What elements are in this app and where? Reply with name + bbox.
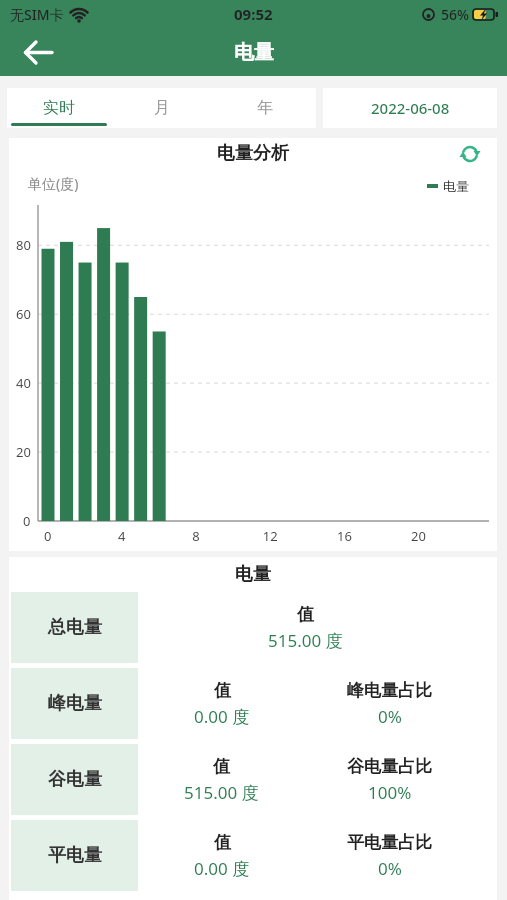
staticText: 实时 [43, 98, 75, 118]
staticText: 电量 [234, 40, 274, 65]
staticText: 0% [378, 857, 402, 880]
button[interactable]: 年 [213, 88, 316, 128]
staticText: 0.00 度 [194, 705, 250, 728]
staticText: 515.00 度 [268, 629, 343, 652]
button[interactable]: 峰电量 [11, 668, 497, 739]
staticText: 平电量 [48, 844, 102, 867]
staticText: 电量分析 [217, 142, 289, 165]
button[interactable] [461, 145, 479, 163]
staticText: 平电量占比 [347, 832, 432, 853]
staticText: 年 [257, 98, 273, 118]
staticText: 515.00 度 [184, 781, 259, 804]
staticText: 值 [213, 756, 230, 777]
staticText: 峰电量占比 [347, 680, 432, 701]
staticText: 值 [214, 680, 231, 701]
staticText: 09:52 [234, 4, 273, 24]
staticText: 电量 [443, 178, 469, 194]
button[interactable]: 总电量 [11, 592, 497, 663]
button[interactable]: 2022-06-08 [323, 88, 497, 128]
button[interactable] [20, 34, 56, 70]
staticText: 谷电量 [48, 768, 102, 791]
staticText: 值 [297, 604, 314, 625]
staticText: 0.00 度 [194, 857, 250, 880]
staticText: 谷电量占比 [347, 756, 432, 777]
staticText: 单位(度) [28, 174, 79, 193]
staticText: 0% [378, 705, 402, 728]
staticText: 无SIM卡 [10, 5, 64, 24]
button[interactable]: 实时 [7, 88, 110, 128]
staticText: 2022-06-08 [371, 98, 450, 118]
button[interactable]: 月 [110, 88, 213, 128]
button[interactable]: 平电量 [11, 820, 497, 891]
staticText: 电量 [235, 563, 271, 586]
staticText: 总电量 [48, 616, 102, 639]
staticText: 值 [214, 832, 231, 853]
staticText: 100% [368, 781, 412, 804]
staticText: 峰电量 [48, 692, 102, 715]
button[interactable]: 谷电量 [11, 744, 497, 815]
staticText: 月 [154, 98, 170, 118]
staticText: 56% [441, 5, 469, 24]
